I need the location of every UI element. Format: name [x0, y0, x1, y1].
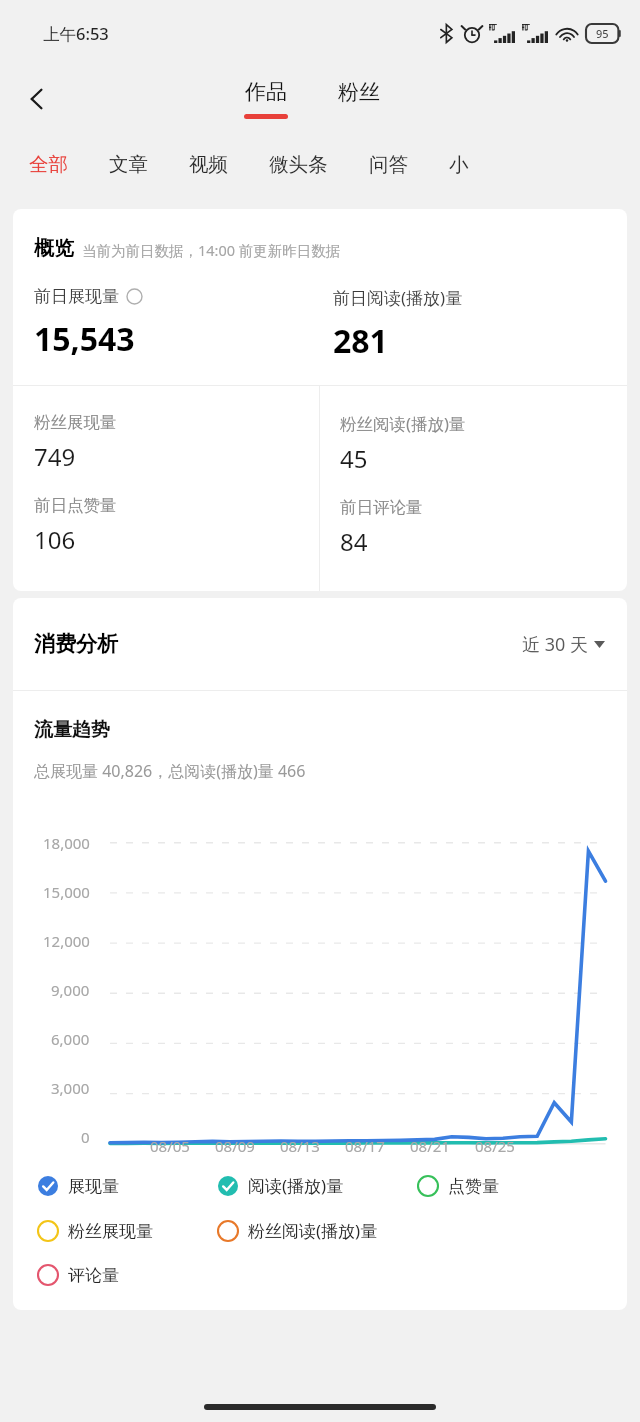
button[interactable]: 文章 — [107, 144, 150, 185]
staticText: 粉丝展现量 — [68, 1221, 153, 1242]
button[interactable]: 全部 — [27, 144, 70, 185]
staticText: 08/05 — [150, 1136, 215, 1156]
button[interactable]: 前日阅读(播放)量 — [333, 286, 627, 363]
staticText: 281 — [333, 319, 388, 363]
staticText: 展现量 — [68, 1176, 119, 1197]
staticText: 粉丝展现量 — [34, 412, 117, 433]
staticText: 粉丝 — [338, 79, 380, 105]
button[interactable]: 近 30 天 — [518, 628, 609, 661]
staticText: 前日点赞量 — [34, 495, 117, 516]
staticText: 95 — [596, 26, 609, 41]
button[interactable]: 粉丝阅读(播放)量 — [217, 1217, 467, 1244]
staticText: 08/17 — [345, 1136, 410, 1156]
staticText: 总展现量 40,826，总阅读(播放)量 466 — [34, 760, 306, 782]
staticText: 前日评论量 — [340, 497, 423, 518]
staticText: 18,000 — [43, 833, 90, 853]
staticText: 749 — [34, 440, 76, 473]
staticText: 微头条 — [269, 152, 328, 177]
button[interactable]: 阅读(播放)量 — [217, 1172, 417, 1199]
button[interactable]: 粉丝展现量 — [34, 412, 117, 473]
staticText: 文章 — [109, 152, 148, 177]
staticText: 106 — [34, 523, 76, 556]
staticText: 小 — [449, 152, 469, 177]
staticText: 流量趋势 — [34, 718, 110, 742]
button[interactable]: 展现量 — [37, 1173, 217, 1199]
button[interactable]: 粉丝阅读(播放)量 — [340, 412, 466, 475]
staticText: 概览 — [34, 236, 74, 261]
staticText: 问答 — [369, 152, 408, 177]
staticText: 45 — [340, 442, 368, 475]
button[interactable]: 粉丝 — [328, 86, 390, 112]
staticText: 3,000 — [51, 1078, 90, 1098]
staticText: 评论量 — [68, 1265, 119, 1286]
staticText: 9,000 — [51, 980, 90, 1000]
button[interactable]: 微头条 — [267, 144, 330, 185]
staticText: 84 — [340, 525, 368, 558]
staticText: 全部 — [29, 152, 68, 177]
staticText: 08/25 — [475, 1136, 540, 1156]
staticText: 当前为前日数据，14:00 前更新昨日数据 — [82, 240, 341, 260]
staticText: 近 30 天 — [522, 632, 588, 657]
staticText: 作品 — [245, 79, 287, 105]
button[interactable]: 视频 — [187, 144, 230, 185]
staticText: 0 — [81, 1127, 90, 1147]
staticText: 上午6:53 — [43, 22, 109, 45]
button[interactable]: 前日点赞量 — [34, 495, 117, 556]
button[interactable]: 作品 — [234, 79, 298, 119]
button[interactable]: 问答 — [367, 144, 410, 185]
button[interactable]: 粉丝展现量 — [37, 1218, 217, 1244]
staticText: 消费分析 — [34, 631, 118, 657]
button[interactable]: 评论量 — [37, 1262, 217, 1288]
staticText: 视频 — [189, 152, 228, 177]
staticText: 15,543 — [34, 317, 135, 361]
staticText: 粉丝阅读(播放)量 — [340, 412, 466, 435]
staticText: 前日展现量 — [34, 286, 119, 307]
staticText: 08/21 — [410, 1136, 475, 1156]
button[interactable]: 前日评论量 — [340, 497, 423, 558]
staticText: 粉丝阅读(播放)量 — [248, 1219, 378, 1242]
button[interactable]: Back — [14, 76, 60, 122]
button[interactable]: 前日展现量 — [34, 286, 320, 361]
staticText: 08/09 — [215, 1136, 280, 1156]
staticText: 前日阅读(播放)量 — [333, 286, 463, 309]
staticText: 6,000 — [51, 1029, 90, 1049]
button[interactable]: 点赞量 — [417, 1173, 557, 1199]
staticText: 阅读(播放)量 — [248, 1174, 344, 1197]
staticText: 08/13 — [280, 1136, 345, 1156]
staticText: 15,000 — [43, 882, 90, 902]
button[interactable]: 小 — [447, 144, 471, 185]
staticText: 点赞量 — [448, 1176, 499, 1197]
staticText: 12,000 — [43, 931, 90, 951]
